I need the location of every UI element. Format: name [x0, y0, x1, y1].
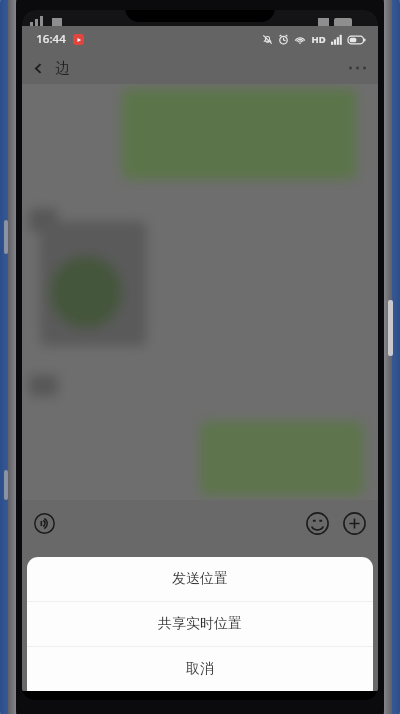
button[interactable]: 视频通话	[211, 579, 273, 634]
button[interactable]: 取消	[27, 647, 373, 691]
button[interactable]: More options	[337, 58, 378, 78]
button[interactable]: More attachments	[341, 510, 368, 537]
button[interactable]: 发送位置	[27, 557, 373, 601]
staticText: 发送位置	[172, 570, 228, 588]
button[interactable]: Emoji	[304, 510, 331, 537]
staticText: 取消	[186, 660, 214, 678]
staticText: HD	[311, 33, 326, 46]
staticText: 共享实时位置	[158, 615, 242, 633]
staticText: 16:44	[36, 31, 66, 47]
staticText: 边	[55, 59, 70, 78]
button[interactable]: 拍摄	[133, 579, 182, 634]
staticText: 拍摄	[148, 618, 167, 630]
button[interactable]: Voice input	[30, 509, 59, 538]
staticText: 视频通话	[223, 618, 261, 630]
button[interactable]: 共享实时位置	[27, 602, 373, 646]
button[interactable]: Back	[22, 55, 80, 82]
